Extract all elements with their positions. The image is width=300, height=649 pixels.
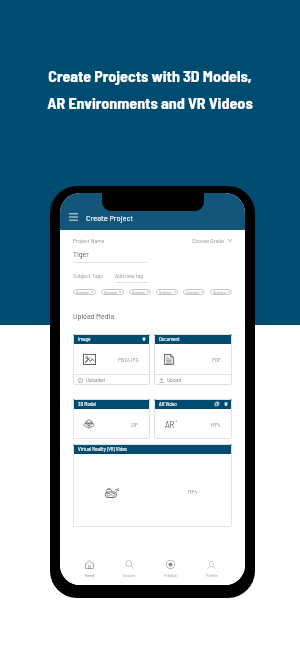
button[interactable]: Publish bbox=[150, 552, 191, 585]
staticText: Search bbox=[123, 572, 136, 578]
button[interactable]: Science bbox=[73, 289, 96, 295]
staticText: Subject Tags bbox=[73, 272, 103, 279]
button[interactable]: Document bbox=[154, 334, 232, 385]
staticText: Image bbox=[78, 336, 91, 342]
button[interactable]: Science bbox=[129, 289, 151, 295]
button[interactable]: Virtual Reality (VR) Video bbox=[73, 444, 232, 527]
staticText: Choose Grade bbox=[192, 237, 225, 244]
staticText: Upload Media bbox=[73, 311, 115, 321]
staticText: Create Project bbox=[86, 212, 134, 222]
staticText: PDF bbox=[212, 356, 221, 363]
staticText: 3D Model bbox=[78, 401, 96, 407]
staticText: Science bbox=[186, 290, 199, 295]
staticText: Document bbox=[159, 336, 180, 342]
staticText: + bbox=[175, 418, 178, 424]
staticText: Science bbox=[132, 290, 145, 295]
button[interactable]: Science bbox=[101, 289, 124, 295]
button[interactable]: Choose Grade bbox=[192, 237, 232, 244]
button[interactable]: Science bbox=[210, 289, 232, 295]
staticText: Virtual Reality (VR) Video bbox=[78, 446, 128, 452]
button[interactable]: Search bbox=[109, 552, 150, 585]
other: Delete bbox=[224, 402, 228, 406]
staticText: AR Environments and VR Videos bbox=[47, 93, 253, 112]
button[interactable]: Science bbox=[156, 289, 178, 295]
button[interactable]: Science bbox=[183, 289, 205, 295]
staticText: Add new tag bbox=[115, 272, 144, 279]
staticText: ZIP bbox=[131, 421, 139, 428]
button[interactable]: AR Video bbox=[154, 399, 232, 439]
staticText: Project Name bbox=[73, 237, 105, 244]
other: Replace bbox=[215, 402, 219, 406]
staticText: Feed bbox=[85, 572, 94, 578]
button[interactable]: Menu bbox=[69, 212, 78, 222]
staticText: Create Projects with 3D Models, bbox=[48, 66, 252, 85]
staticText: Tiger bbox=[73, 249, 89, 259]
staticText: Science bbox=[213, 290, 226, 295]
other: Delete bbox=[142, 337, 146, 341]
staticText: Uploaded bbox=[86, 377, 105, 383]
staticText: PNG/JPG bbox=[118, 356, 139, 363]
button[interactable]: Profile bbox=[191, 552, 232, 585]
button[interactable]: Image bbox=[73, 334, 150, 385]
staticText: Upload bbox=[167, 377, 181, 383]
button[interactable]: 3D Model bbox=[73, 399, 150, 439]
staticText: Profile bbox=[206, 572, 218, 578]
staticText: MP4 bbox=[188, 488, 198, 495]
staticText: Science bbox=[76, 290, 89, 295]
staticText: Science bbox=[159, 290, 172, 295]
staticText: Science bbox=[104, 290, 117, 295]
staticText: MP4 bbox=[211, 421, 221, 428]
button[interactable]: Feed bbox=[69, 552, 109, 585]
staticText: AR Video bbox=[159, 401, 177, 407]
staticText: AR bbox=[165, 419, 175, 430]
staticText: Publish bbox=[164, 572, 177, 578]
